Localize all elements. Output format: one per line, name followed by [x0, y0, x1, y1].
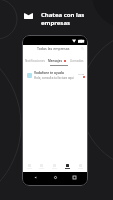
- button[interactable]: Facturas: [48, 161, 61, 172]
- button[interactable]: Search: [80, 46, 85, 51]
- staticText: Chatea con las empresas: [41, 11, 87, 26]
- staticText: Notificaciones: [25, 59, 45, 63]
- button[interactable]: Inicio: [23, 161, 35, 172]
- button[interactable]: Llamadas: [67, 57, 87, 65]
- staticText: Vodafone te ayuda: [34, 71, 64, 75]
- staticText: 12:30: [78, 72, 85, 75]
- button[interactable]: Todas las empresas: [37, 46, 70, 51]
- button[interactable]: Tienda: [35, 161, 48, 172]
- staticText: Mensajes: [48, 59, 63, 63]
- button[interactable]: Vodafone te ayuda: [23, 69, 87, 81]
- button[interactable]: Notificaciones: [23, 57, 47, 65]
- button[interactable]: Back: [33, 175, 38, 180]
- staticText: Llamadas: [70, 59, 84, 63]
- button[interactable]: Home: [53, 175, 58, 180]
- button[interactable]: Mensajes: [61, 161, 74, 172]
- button[interactable]: Mas: [74, 161, 87, 172]
- button[interactable]: Mensajes: [47, 57, 67, 65]
- button[interactable]: Recents: [72, 175, 77, 180]
- staticText: Hola, consulta tu factura aqui: [34, 76, 74, 80]
